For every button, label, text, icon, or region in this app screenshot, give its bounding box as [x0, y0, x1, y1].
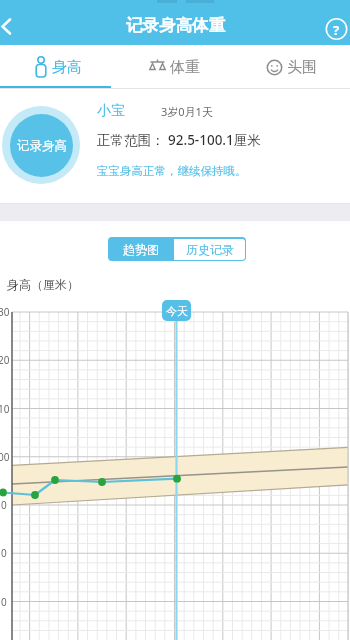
button[interactable]: 头围 — [233, 45, 350, 89]
staticText: 小宝 — [97, 102, 125, 120]
staticText: 体重 — [170, 58, 200, 77]
staticText: 3岁0月1天 — [161, 104, 213, 119]
staticText: 20 — [0, 353, 10, 367]
button[interactable]: 趋势图 — [108, 237, 173, 261]
staticText: 0 — [1, 595, 7, 609]
staticText: 身高 — [52, 58, 82, 77]
button[interactable]: 记录身高 — [2, 106, 80, 184]
button[interactable]: 历史记录 — [173, 237, 246, 261]
button[interactable]: 身高 — [0, 45, 116, 89]
staticText: 宝宝身高正常，继续保持哦。 — [97, 164, 247, 178]
staticText: ? — [333, 21, 340, 39]
staticText: 身高（厘米） — [7, 277, 79, 292]
staticText: 今天 — [166, 304, 188, 318]
staticText: 正常范围： 92.5-100.1厘米 — [97, 131, 261, 149]
staticText: 0 — [1, 498, 7, 512]
button[interactable] — [316, 13, 350, 45]
staticText: 记录身高体重 — [126, 15, 225, 36]
staticText: 00 — [0, 450, 10, 464]
staticText: 10 — [0, 402, 10, 416]
button[interactable] — [0, 10, 30, 45]
staticText: 历史记录 — [186, 242, 234, 257]
staticText: 30 — [0, 305, 10, 319]
staticText: 头围 — [287, 58, 317, 77]
staticText: 0 — [1, 546, 7, 560]
button[interactable]: 体重 — [116, 45, 233, 89]
staticText: 趋势图 — [123, 242, 159, 257]
staticText: 记录身高 — [17, 138, 67, 154]
